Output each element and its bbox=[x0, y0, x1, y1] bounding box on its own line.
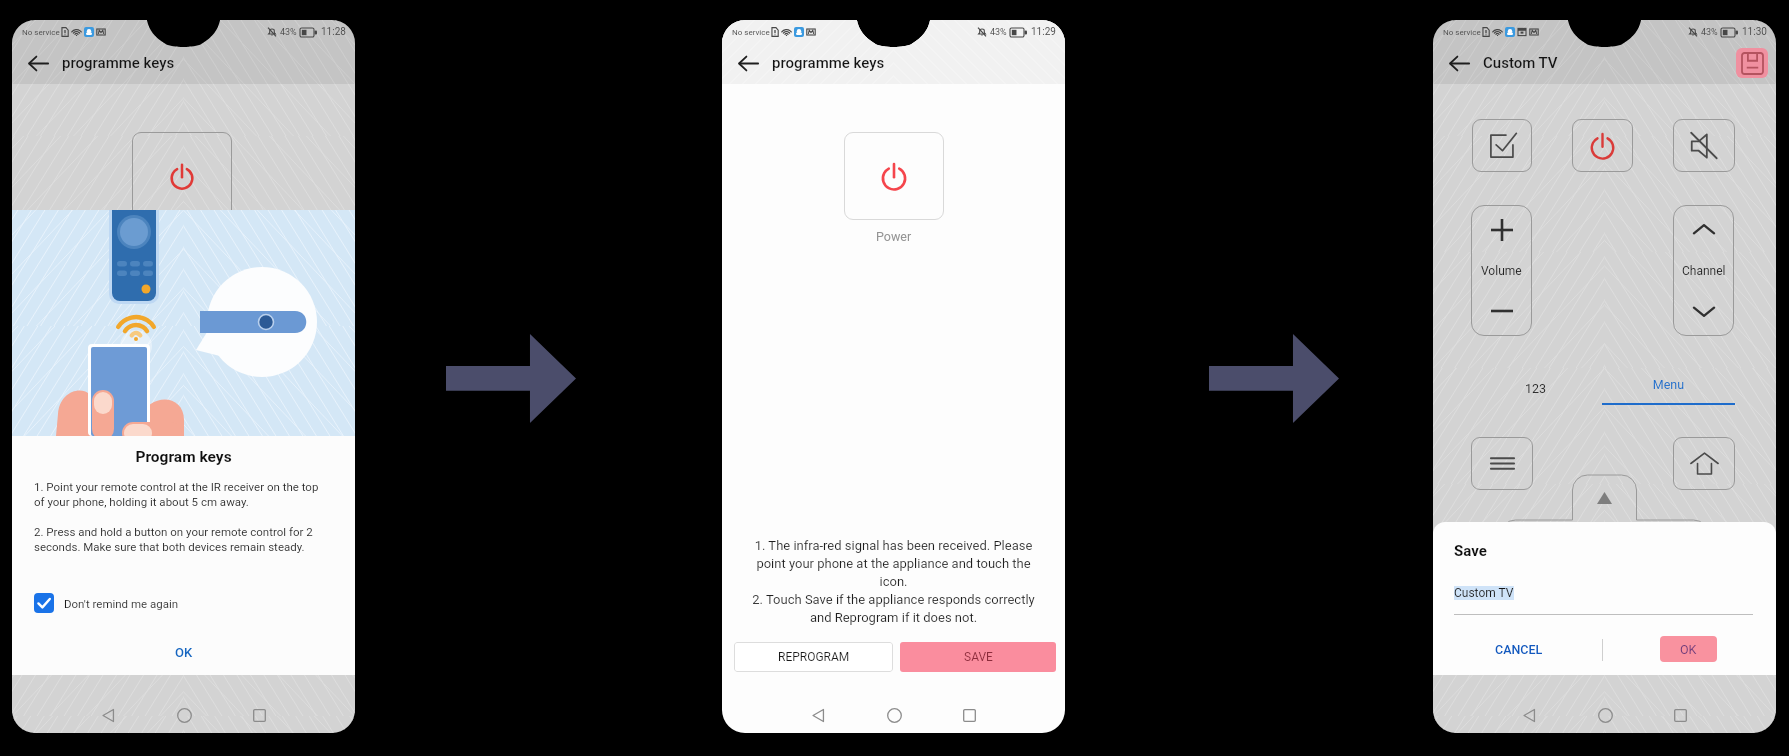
button[interactable]: Home bbox=[1588, 698, 1622, 732]
staticText: No service bbox=[1443, 28, 1481, 37]
button[interactable]: Home bbox=[167, 698, 201, 732]
button[interactable]: SAVE bbox=[900, 642, 1056, 672]
button[interactable]: Back bbox=[1444, 48, 1474, 78]
button[interactable]: Back bbox=[801, 698, 835, 732]
staticText: programme keys bbox=[62, 54, 175, 72]
staticText: 11:30 bbox=[1742, 26, 1767, 38]
staticText: OK bbox=[1680, 642, 1697, 657]
button[interactable]: Back bbox=[733, 48, 763, 78]
button[interactable]: Power bbox=[132, 132, 232, 220]
staticText: 11:28 bbox=[321, 26, 346, 38]
button[interactable]: Back bbox=[1512, 698, 1546, 732]
staticText: Save bbox=[1454, 542, 1487, 560]
staticText: 1. The infra-red signal has been receive… bbox=[746, 538, 1041, 625]
staticText: CANCEL bbox=[1495, 642, 1543, 657]
button[interactable]: Back bbox=[23, 48, 53, 78]
button[interactable]: Home bbox=[877, 698, 911, 732]
button[interactable]: OK bbox=[1660, 636, 1717, 662]
staticText: programme keys bbox=[772, 54, 885, 72]
button[interactable]: REPROGRAM bbox=[734, 642, 893, 672]
staticText: 43% bbox=[280, 27, 297, 38]
staticText: No service bbox=[22, 28, 60, 37]
button[interactable]: 123 bbox=[1493, 375, 1579, 402]
button[interactable]: Learn bbox=[1472, 119, 1532, 172]
button[interactable]: Recent apps bbox=[952, 698, 986, 732]
staticText: Menu bbox=[1602, 377, 1735, 392]
staticText: OK bbox=[175, 645, 193, 660]
button[interactable]: Save bbox=[1736, 48, 1768, 78]
button[interactable]: Menu bbox=[1602, 375, 1735, 405]
staticText: 123 bbox=[1525, 381, 1547, 396]
staticText: 1. Point your remote control at the IR r… bbox=[34, 480, 329, 509]
button[interactable]: Mute bbox=[1673, 119, 1735, 172]
button[interactable]: OK bbox=[143, 639, 224, 666]
button[interactable]: Volume bbox=[1471, 205, 1532, 336]
button[interactable]: Power bbox=[1572, 119, 1633, 172]
staticText: Don't remind me again bbox=[64, 597, 179, 610]
staticText: SAVE bbox=[964, 650, 993, 664]
staticText: 43% bbox=[1701, 27, 1718, 38]
button[interactable]: CANCEL bbox=[1481, 635, 1557, 663]
button[interactable]: Recent apps bbox=[242, 698, 276, 732]
button[interactable]: Back bbox=[91, 698, 125, 732]
staticText: Power bbox=[876, 229, 912, 244]
button[interactable]: Power bbox=[844, 132, 944, 220]
button[interactable]: Channel bbox=[1673, 205, 1734, 336]
staticText: 43% bbox=[990, 27, 1007, 38]
staticText: Custom TV bbox=[1454, 586, 1514, 600]
staticText: No service bbox=[732, 28, 770, 37]
button[interactable]: Home bbox=[1673, 437, 1735, 490]
staticText: 11:29 bbox=[1031, 26, 1056, 38]
staticText: REPROGRAM bbox=[778, 650, 850, 664]
staticText: Program keys bbox=[12, 448, 355, 466]
button[interactable]: Don't remind me again bbox=[34, 591, 179, 615]
staticText: 2. Press and hold a button on your remot… bbox=[34, 525, 321, 554]
button[interactable]: Recent apps bbox=[1663, 698, 1697, 732]
staticText: Channel bbox=[1682, 264, 1726, 278]
staticText: Custom TV bbox=[1483, 54, 1558, 72]
button[interactable]: Menu bbox=[1471, 437, 1533, 490]
staticText: Volume bbox=[1481, 264, 1522, 278]
